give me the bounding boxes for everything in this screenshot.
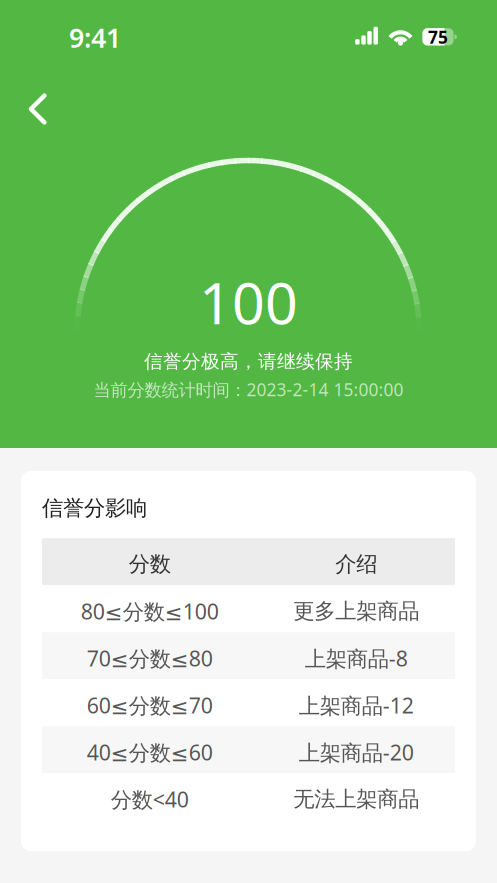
staticText: 75 bbox=[428, 25, 448, 48]
staticText: 无法上架商品 bbox=[293, 786, 419, 812]
staticText: 上架商品-12 bbox=[299, 691, 414, 719]
staticText: 100 bbox=[199, 264, 298, 340]
staticText: 9:41 bbox=[69, 20, 121, 55]
staticText: 更多上架商品 bbox=[293, 598, 419, 624]
staticText: 分数 bbox=[129, 551, 171, 577]
staticText: 分数<40 bbox=[111, 785, 189, 813]
staticText: 当前分数统计时间：2023-2-14 15:00:00 bbox=[93, 378, 403, 401]
staticText: 上架商品-8 bbox=[305, 644, 408, 672]
staticText: 信誉分极高，请继续保持 bbox=[144, 350, 353, 373]
staticText: 40≤分数≤60 bbox=[87, 738, 213, 766]
staticText: 60≤分数≤70 bbox=[87, 691, 213, 719]
staticText: 上架商品-20 bbox=[299, 738, 414, 766]
staticText: 70≤分数≤80 bbox=[87, 644, 213, 672]
staticText: 介绍 bbox=[335, 551, 377, 577]
button[interactable]: Back bbox=[15, 87, 59, 131]
staticText: 信誉分影响 bbox=[42, 495, 147, 521]
staticText: 80≤分数≤100 bbox=[81, 597, 219, 625]
